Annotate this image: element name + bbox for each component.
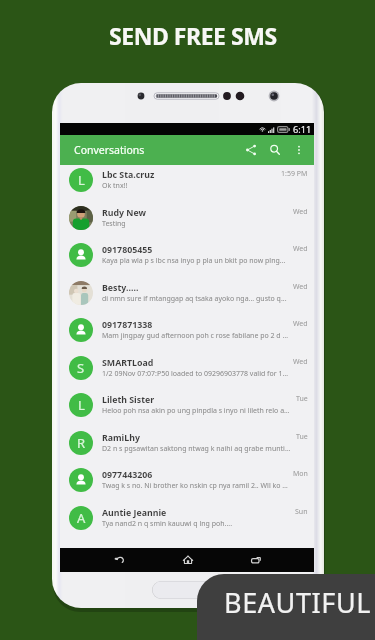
staticText: Lbc Sta.cruz [102, 169, 155, 181]
staticText: Tue [296, 432, 308, 442]
staticText: 1/2 09Nov 07:07:P50 loaded to 0929690377… [102, 369, 289, 379]
staticText: Auntie Jeannie [102, 507, 167, 519]
button[interactable]: A [60, 499, 314, 536]
staticText: L [78, 171, 85, 189]
staticText: Conversations [74, 143, 145, 157]
button[interactable]: 0977443206 [60, 461, 314, 498]
staticText: S [77, 359, 85, 377]
staticText: Mon [293, 469, 308, 479]
staticText: Tue [296, 394, 308, 404]
button[interactable]: S [60, 349, 314, 386]
staticText: BEAUTIFUL [224, 584, 372, 621]
staticText: SMARTLoad [102, 357, 154, 369]
staticText: 1:59 PM [281, 169, 308, 179]
staticText: Besty..... [102, 282, 139, 294]
button[interactable]: L [60, 386, 314, 423]
staticText: SEND FREE SMS [109, 20, 277, 51]
staticText: Twag k s no. Ni brother ko nskin cp nya … [102, 481, 289, 491]
staticText: A [77, 509, 86, 527]
button[interactable]: Back [100, 548, 139, 572]
staticText: Wed [293, 207, 308, 217]
staticText: 0977443206 [102, 469, 153, 481]
staticText: Wed [293, 319, 308, 329]
button[interactable]: Search [263, 135, 287, 165]
staticText: D2 n s pgsawitan saktong ntwag k naihi a… [102, 444, 292, 454]
button[interactable]: 0917871338 [60, 311, 314, 348]
staticText: Mam jingpay gud afternoon poh c rose fab… [102, 331, 289, 341]
staticText: L [78, 396, 85, 414]
staticText: Kaya pla wla p s lbc nsa inyo p pla un b… [102, 256, 286, 266]
staticText: Wed [293, 244, 308, 254]
staticText: RamiLhy [102, 432, 140, 444]
staticText: Wed [293, 357, 308, 367]
staticText: Ok tnx!! [102, 181, 128, 191]
button[interactable]: L [60, 165, 314, 198]
staticText: Lileth Sister [102, 394, 155, 406]
staticText: di nmn sure if mtanggap aq tsaka ayoko n… [102, 294, 287, 304]
staticText: 6:11 [293, 123, 312, 135]
button[interactable]: Home [168, 548, 207, 572]
button[interactable]: Share [239, 135, 263, 165]
staticText: Sun [295, 507, 308, 517]
button[interactable]: More options [287, 135, 311, 165]
button[interactable]: R [60, 424, 314, 461]
staticText: Rudy New [102, 207, 147, 219]
button[interactable]: 0917805455 [60, 236, 314, 273]
staticText: Wed [293, 282, 308, 292]
button[interactable]: Recent apps [236, 548, 275, 572]
staticText: Tya nand2 n q smin kauuwi q lng poh.... [102, 519, 233, 529]
button[interactable]: Rudy New [60, 199, 314, 236]
staticText: R [77, 434, 86, 452]
button[interactable]: Besty..... [60, 274, 314, 311]
staticText: Heloo poh nsa akin po ung pinpdla s inyo… [102, 406, 292, 416]
staticText: 0917805455 [102, 244, 153, 256]
staticText: 0917871338 [102, 319, 153, 331]
staticText: Testing [102, 219, 126, 229]
